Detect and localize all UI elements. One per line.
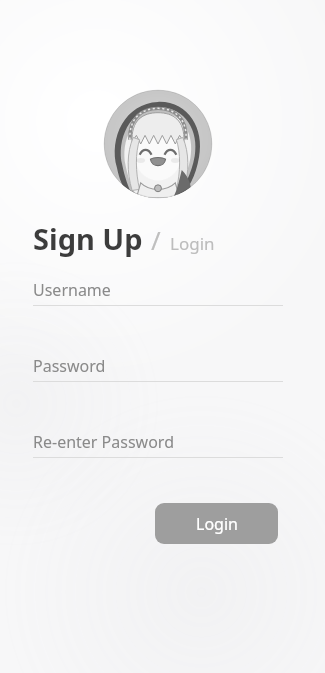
button[interactable]: Password: [33, 355, 283, 382]
button[interactable]: Login: [170, 232, 215, 255]
button[interactable]: Sign Up: [33, 219, 143, 258]
staticText: Password: [33, 355, 106, 377]
button[interactable]: Login: [155, 503, 278, 544]
staticText: Login: [196, 513, 238, 535]
button[interactable]: Re-enter Password: [33, 431, 283, 458]
button[interactable]: Username: [33, 279, 283, 306]
staticText: /: [151, 222, 161, 257]
staticText: Re-enter Password: [33, 431, 174, 453]
staticText: Username: [33, 279, 111, 301]
